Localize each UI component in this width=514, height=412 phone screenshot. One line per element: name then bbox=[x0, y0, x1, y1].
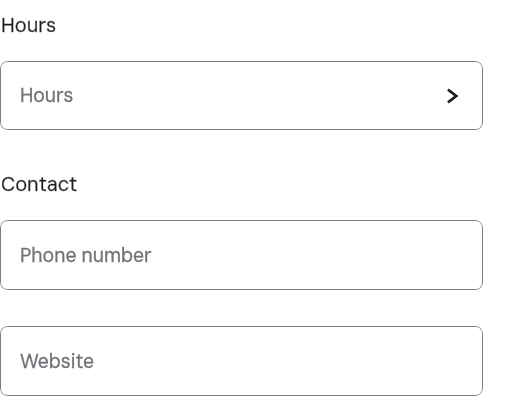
staticText: Phone number bbox=[20, 243, 152, 268]
staticText: Contact bbox=[1, 171, 78, 197]
button[interactable]: Website bbox=[0, 326, 483, 396]
staticText: Website bbox=[20, 349, 94, 374]
staticText: Hours bbox=[1, 12, 57, 38]
staticText: Website bbox=[20, 349, 94, 374]
button[interactable]: Hours bbox=[0, 61, 483, 130]
staticText: Phone number bbox=[20, 243, 152, 268]
staticText: Hours bbox=[1, 12, 57, 38]
staticText: Hours bbox=[20, 83, 74, 108]
button[interactable]: Phone number bbox=[0, 220, 483, 290]
staticText: Hours bbox=[20, 83, 74, 108]
other: Open hours editor bbox=[447, 88, 457, 104]
staticText: Contact bbox=[1, 171, 78, 197]
